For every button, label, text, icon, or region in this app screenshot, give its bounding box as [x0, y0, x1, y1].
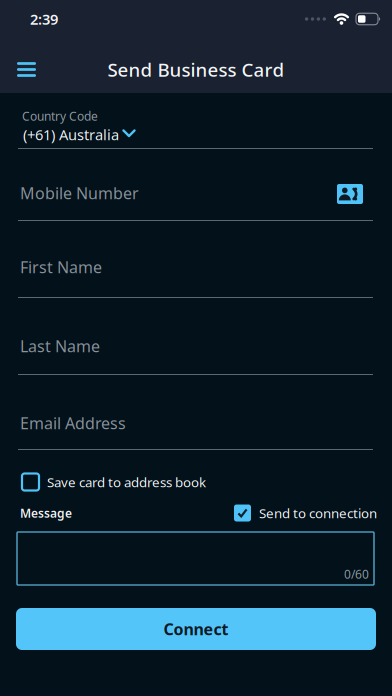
- staticText: Message: [20, 505, 72, 521]
- button[interactable]: Last Name: [0, 336, 392, 375]
- button[interactable]: Save card to address book: [0, 473, 206, 491]
- staticText: 2:39: [30, 9, 58, 29]
- staticText: Country Code: [22, 108, 98, 124]
- button[interactable]: Connect: [16, 608, 376, 650]
- staticText: Save card to address book: [47, 473, 206, 491]
- button[interactable]: Message: [17, 532, 374, 585]
- staticText: Connect: [163, 618, 228, 640]
- button[interactable]: Send to connection: [234, 504, 392, 522]
- staticText: Last Name: [20, 335, 100, 357]
- staticText: First Name: [20, 256, 102, 278]
- button[interactable]: Mobile Number: [0, 183, 392, 221]
- staticText: Send Business Card: [107, 57, 284, 82]
- staticText: Email Address: [20, 412, 126, 434]
- staticText: 0/60: [344, 566, 369, 582]
- button[interactable]: Country Code: [0, 106, 392, 149]
- staticText: Mobile Number: [20, 182, 139, 204]
- button[interactable]: Email Address: [0, 413, 392, 450]
- button[interactable]: Choose contact: [337, 184, 392, 204]
- staticText: (+61) Australia: [23, 125, 119, 144]
- button[interactable]: First Name: [0, 257, 392, 298]
- staticText: Send to connection: [259, 504, 377, 522]
- button[interactable]: Menu: [0, 47, 50, 91]
